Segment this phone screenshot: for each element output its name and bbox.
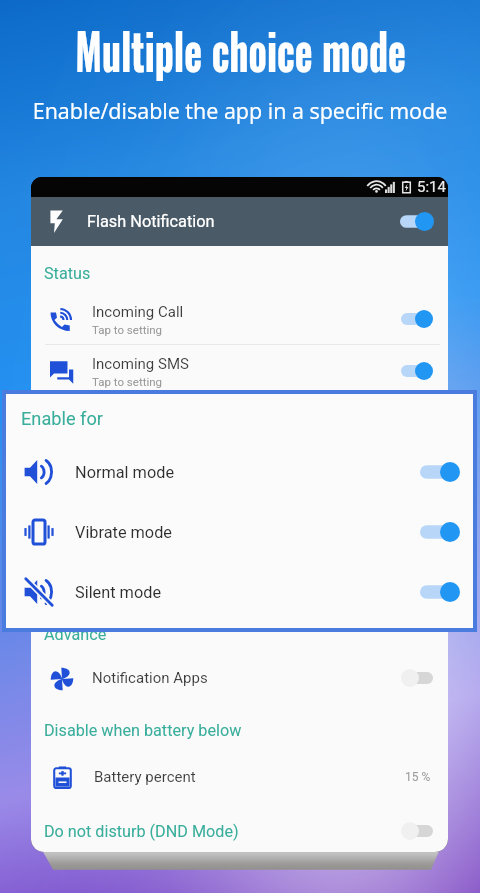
- button[interactable]: Toggle off: [401, 822, 433, 840]
- staticText: Battery percent: [94, 768, 196, 786]
- button[interactable]: Incoming SMS: [31, 345, 448, 397]
- staticText: Incoming Call: [92, 303, 184, 321]
- staticText: Tap to setting: [92, 323, 163, 336]
- staticText: Normal mode: [75, 463, 175, 482]
- staticText: Enable/disable the app in a specific mod…: [0, 96, 480, 125]
- staticText: Silent mode: [75, 583, 162, 602]
- staticText: Do not disturb (DND Mode): [44, 822, 239, 841]
- button[interactable]: Toggle on: [401, 310, 433, 328]
- staticText: Flash Notification: [87, 212, 215, 231]
- button[interactable]: Toggle on: [420, 462, 460, 482]
- staticText: Disable when battery below: [44, 721, 242, 740]
- staticText: Incoming SMS: [92, 355, 189, 373]
- button[interactable]: Disable when battery below: [31, 715, 448, 745]
- button[interactable]: Flash Notification: [31, 197, 448, 246]
- button[interactable]: Advance: [31, 619, 448, 649]
- button[interactable]: Toggle on: [400, 212, 434, 231]
- staticText: Enable for: [21, 408, 103, 429]
- button[interactable]: Notification Apps: [31, 652, 448, 704]
- button[interactable]: Incoming Call: [31, 293, 448, 345]
- button[interactable]: Status: [31, 258, 448, 288]
- button[interactable]: Do not disturb (DND Mode): [31, 816, 448, 846]
- staticText: Advance: [44, 625, 107, 644]
- staticText: 15 %: [405, 770, 431, 784]
- button[interactable]: Battery percent: [31, 752, 448, 802]
- staticText: 5:14: [417, 178, 446, 196]
- button[interactable]: Vibrate mode: [6, 502, 473, 562]
- button[interactable]: Toggle on: [401, 362, 433, 380]
- staticText: Status: [44, 264, 91, 283]
- button[interactable]: Toggle off: [401, 669, 433, 687]
- button[interactable]: Normal mode: [6, 442, 473, 502]
- button[interactable]: Toggle on: [420, 522, 460, 542]
- button[interactable]: Silent mode: [6, 562, 473, 622]
- staticText: Multiple choice mode: [75, 12, 406, 86]
- staticText: Notification Apps: [92, 669, 208, 687]
- button[interactable]: Toggle on: [420, 582, 460, 602]
- staticText: Vibrate mode: [75, 523, 172, 542]
- staticText: Tap to setting: [92, 375, 163, 388]
